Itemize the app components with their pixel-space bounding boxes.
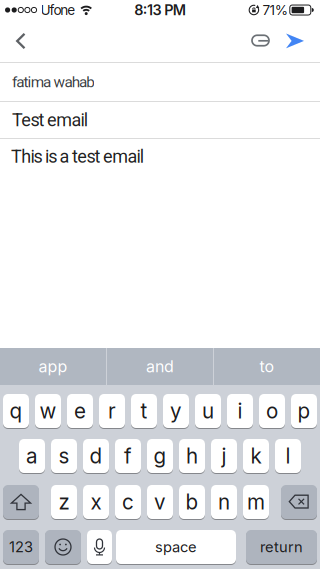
staticText: and — [146, 357, 174, 376]
staticText: k — [250, 443, 261, 468]
staticText: o — [266, 398, 278, 423]
button[interactable]: Send — [278, 20, 320, 62]
button[interactable]: k — [243, 439, 269, 473]
staticText: c — [122, 489, 134, 514]
button[interactable]: return — [246, 530, 317, 564]
button[interactable]: Shift — [3, 485, 39, 519]
button[interactable]: h — [179, 439, 205, 473]
button[interactable]: t — [131, 394, 157, 428]
button[interactable]: f — [115, 439, 141, 473]
staticText: 123 — [9, 538, 33, 556]
button[interactable]: q — [3, 394, 29, 428]
staticText: 71% — [262, 2, 288, 18]
button[interactable]: l — [275, 439, 301, 473]
button[interactable]: This is a test email — [0, 139, 320, 167]
button[interactable]: space — [116, 530, 236, 564]
button[interactable]: e — [67, 394, 93, 428]
staticText: q — [9, 398, 22, 423]
button[interactable]: r — [99, 394, 125, 428]
button[interactable]: c — [115, 485, 141, 519]
button[interactable]: to — [214, 348, 320, 385]
staticText: fatima wahab — [12, 73, 95, 91]
staticText: e — [74, 398, 86, 423]
staticText: y — [170, 398, 182, 423]
button[interactable]: g — [147, 439, 173, 473]
staticText: r — [108, 398, 116, 423]
button[interactable]: p — [291, 394, 317, 428]
staticText: space — [155, 538, 197, 556]
staticText: g — [153, 443, 166, 468]
staticText: j — [221, 443, 226, 468]
staticText: s — [58, 443, 69, 468]
button[interactable]: Test email — [0, 102, 320, 138]
button[interactable]: m — [243, 485, 269, 519]
button[interactable]: s — [51, 439, 77, 473]
staticText: i — [237, 398, 242, 423]
button[interactable]: y — [163, 394, 189, 428]
button[interactable]: z — [51, 485, 77, 519]
button[interactable]: o — [259, 394, 285, 428]
staticText: This is a test email — [11, 146, 144, 167]
button[interactable]: fatima wahab — [0, 63, 320, 101]
button[interactable]: i — [227, 394, 253, 428]
button[interactable]: u — [195, 394, 221, 428]
staticText: m — [247, 489, 265, 514]
staticText: 8:13 PM — [134, 1, 186, 19]
button[interactable]: v — [147, 485, 173, 519]
staticText: u — [202, 398, 214, 423]
button[interactable]: Back — [0, 20, 36, 62]
button[interactable]: x — [83, 485, 109, 519]
staticText: b — [185, 489, 198, 514]
button[interactable]: n — [211, 485, 237, 519]
button[interactable]: 123 — [3, 530, 39, 564]
staticText: p — [297, 398, 310, 423]
button[interactable]: a — [19, 439, 45, 473]
button[interactable]: Attach file — [244, 20, 278, 62]
staticText: return — [260, 538, 303, 556]
button[interactable]: b — [179, 485, 205, 519]
button[interactable]: Dictate — [87, 530, 112, 564]
button[interactable]: Emoji — [45, 530, 81, 564]
staticText: a — [26, 443, 38, 468]
button[interactable]: and — [107, 348, 213, 385]
staticText: v — [154, 489, 166, 514]
staticText: Test email — [12, 109, 88, 131]
staticText: l — [285, 443, 290, 468]
button[interactable]: j — [211, 439, 237, 473]
button[interactable]: app — [0, 348, 106, 385]
staticText: x — [90, 489, 101, 514]
staticText: Ufone — [41, 2, 75, 18]
staticText: h — [186, 443, 198, 468]
staticText: app — [38, 357, 67, 376]
button[interactable]: w — [35, 394, 61, 428]
staticText: to — [259, 357, 274, 376]
staticText: n — [218, 489, 230, 514]
staticText: z — [58, 489, 69, 514]
button[interactable]: Delete — [281, 485, 317, 519]
staticText: t — [140, 398, 147, 423]
staticText: w — [39, 398, 56, 423]
staticText: f — [124, 443, 132, 468]
staticText: d — [89, 443, 102, 468]
button[interactable]: d — [83, 439, 109, 473]
